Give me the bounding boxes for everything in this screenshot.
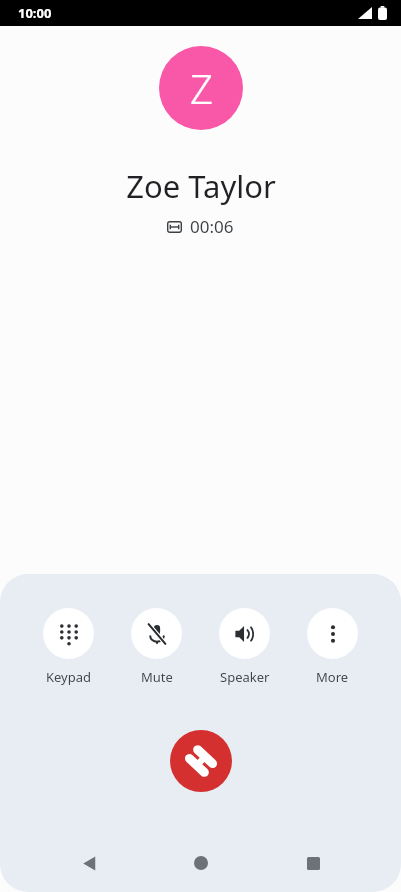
staticText: Keypad xyxy=(46,668,92,686)
button[interactable]: Recent apps xyxy=(289,839,337,887)
button[interactable]: Back xyxy=(64,839,112,887)
button[interactable]: Mute xyxy=(125,606,188,688)
staticText: More xyxy=(316,668,349,686)
staticText: Speaker xyxy=(220,668,270,686)
button[interactable]: Keypad xyxy=(37,606,100,688)
staticText: 00:06 xyxy=(190,215,234,238)
staticText: Z xyxy=(190,61,213,115)
staticText: Mute xyxy=(141,668,173,686)
button[interactable]: More xyxy=(301,606,364,688)
staticText: Zoe Taylor xyxy=(126,165,276,207)
button[interactable]: Home xyxy=(177,839,225,887)
button[interactable]: End call xyxy=(170,730,232,792)
button[interactable]: Speaker xyxy=(213,606,276,688)
staticText: 10:00 xyxy=(18,4,52,22)
